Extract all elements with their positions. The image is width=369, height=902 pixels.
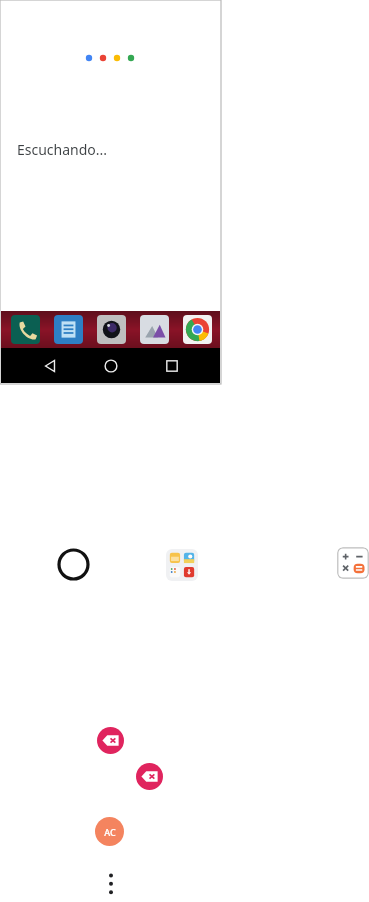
button[interactable]	[97, 315, 126, 344]
button[interactable]: Back	[43, 359, 57, 373]
button[interactable]: App folder	[166, 549, 198, 581]
staticText: AC	[104, 826, 116, 838]
button[interactable]: Backspace	[97, 727, 124, 754]
button[interactable]: Backspace	[136, 763, 163, 790]
button[interactable]: More options	[101, 870, 121, 900]
button[interactable]: Calculator	[337, 547, 369, 579]
button[interactable]: Circle	[57, 548, 90, 581]
button[interactable]: AC	[95, 817, 124, 846]
button[interactable]	[54, 315, 83, 344]
staticText: Escuchando...	[17, 140, 108, 159]
button[interactable]	[11, 315, 40, 344]
button[interactable]: Recent apps	[165, 359, 179, 373]
button[interactable]: Home	[104, 359, 118, 373]
button[interactable]	[183, 315, 212, 344]
button[interactable]	[140, 315, 169, 344]
